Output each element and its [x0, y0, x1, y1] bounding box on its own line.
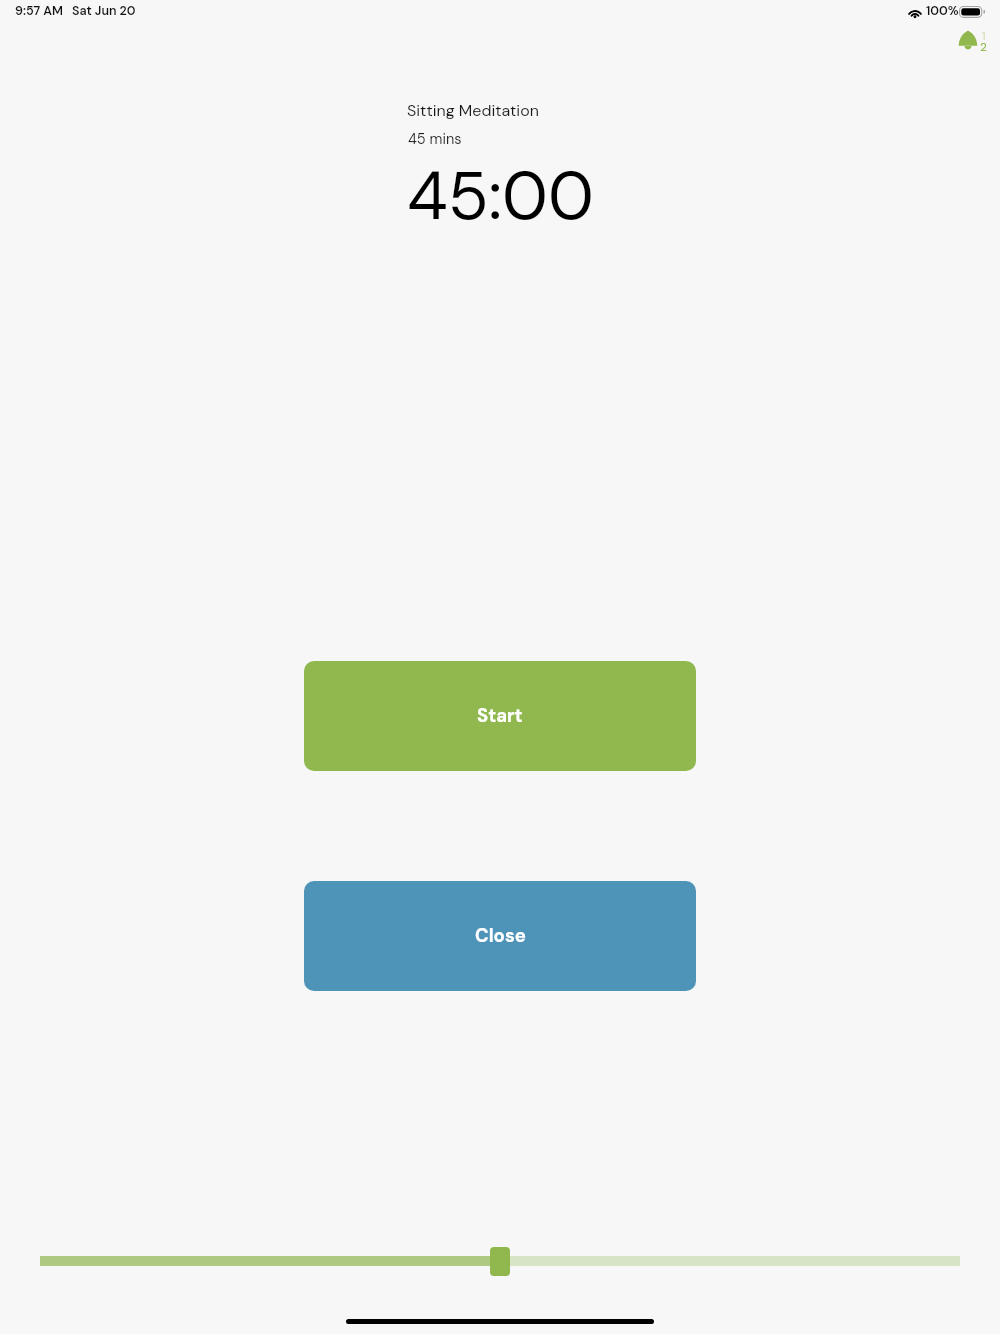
staticText: 1: [982, 28, 986, 44]
staticText: Sitting Meditation: [407, 100, 539, 121]
staticText: 100%: [926, 3, 959, 19]
staticText: 2: [980, 39, 987, 55]
button[interactable]: Start: [304, 661, 696, 771]
staticText: Close: [475, 924, 526, 948]
button[interactable]: Bells: 1 of 2: [956, 26, 992, 54]
button[interactable]: Close: [304, 881, 696, 991]
staticText: Sat Jun 20: [72, 3, 136, 19]
staticText: 45 mins: [408, 130, 462, 149]
staticText: 9:57 AM: [15, 3, 63, 19]
staticText: 45:00: [407, 153, 594, 240]
button[interactable]: Duration slider: [40, 1245, 960, 1279]
staticText: Start: [477, 704, 523, 728]
